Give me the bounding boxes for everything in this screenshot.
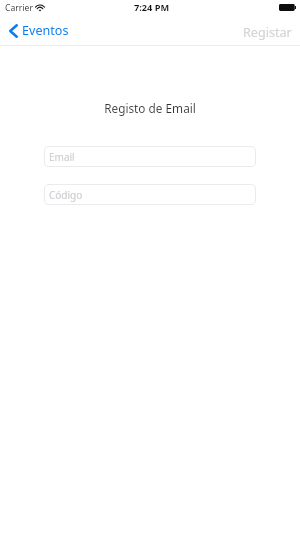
button[interactable]: Registar [235, 21, 300, 40]
button[interactable]: Email [44, 146, 256, 167]
staticText: Eventos [22, 22, 69, 39]
staticText: Carrier [5, 2, 33, 13]
other: Back [9, 24, 18, 38]
button[interactable]: Back [2, 21, 71, 40]
staticText: Email [49, 150, 75, 164]
button[interactable]: Código [44, 184, 256, 205]
other: Battery full [279, 4, 296, 11]
staticText: 7:24 PM [134, 1, 170, 12]
staticText: Código [49, 188, 83, 202]
staticText: Registar [243, 24, 292, 41]
other: Wi-Fi signal [36, 3, 44, 10]
staticText: Registo de Email [0, 100, 300, 116]
